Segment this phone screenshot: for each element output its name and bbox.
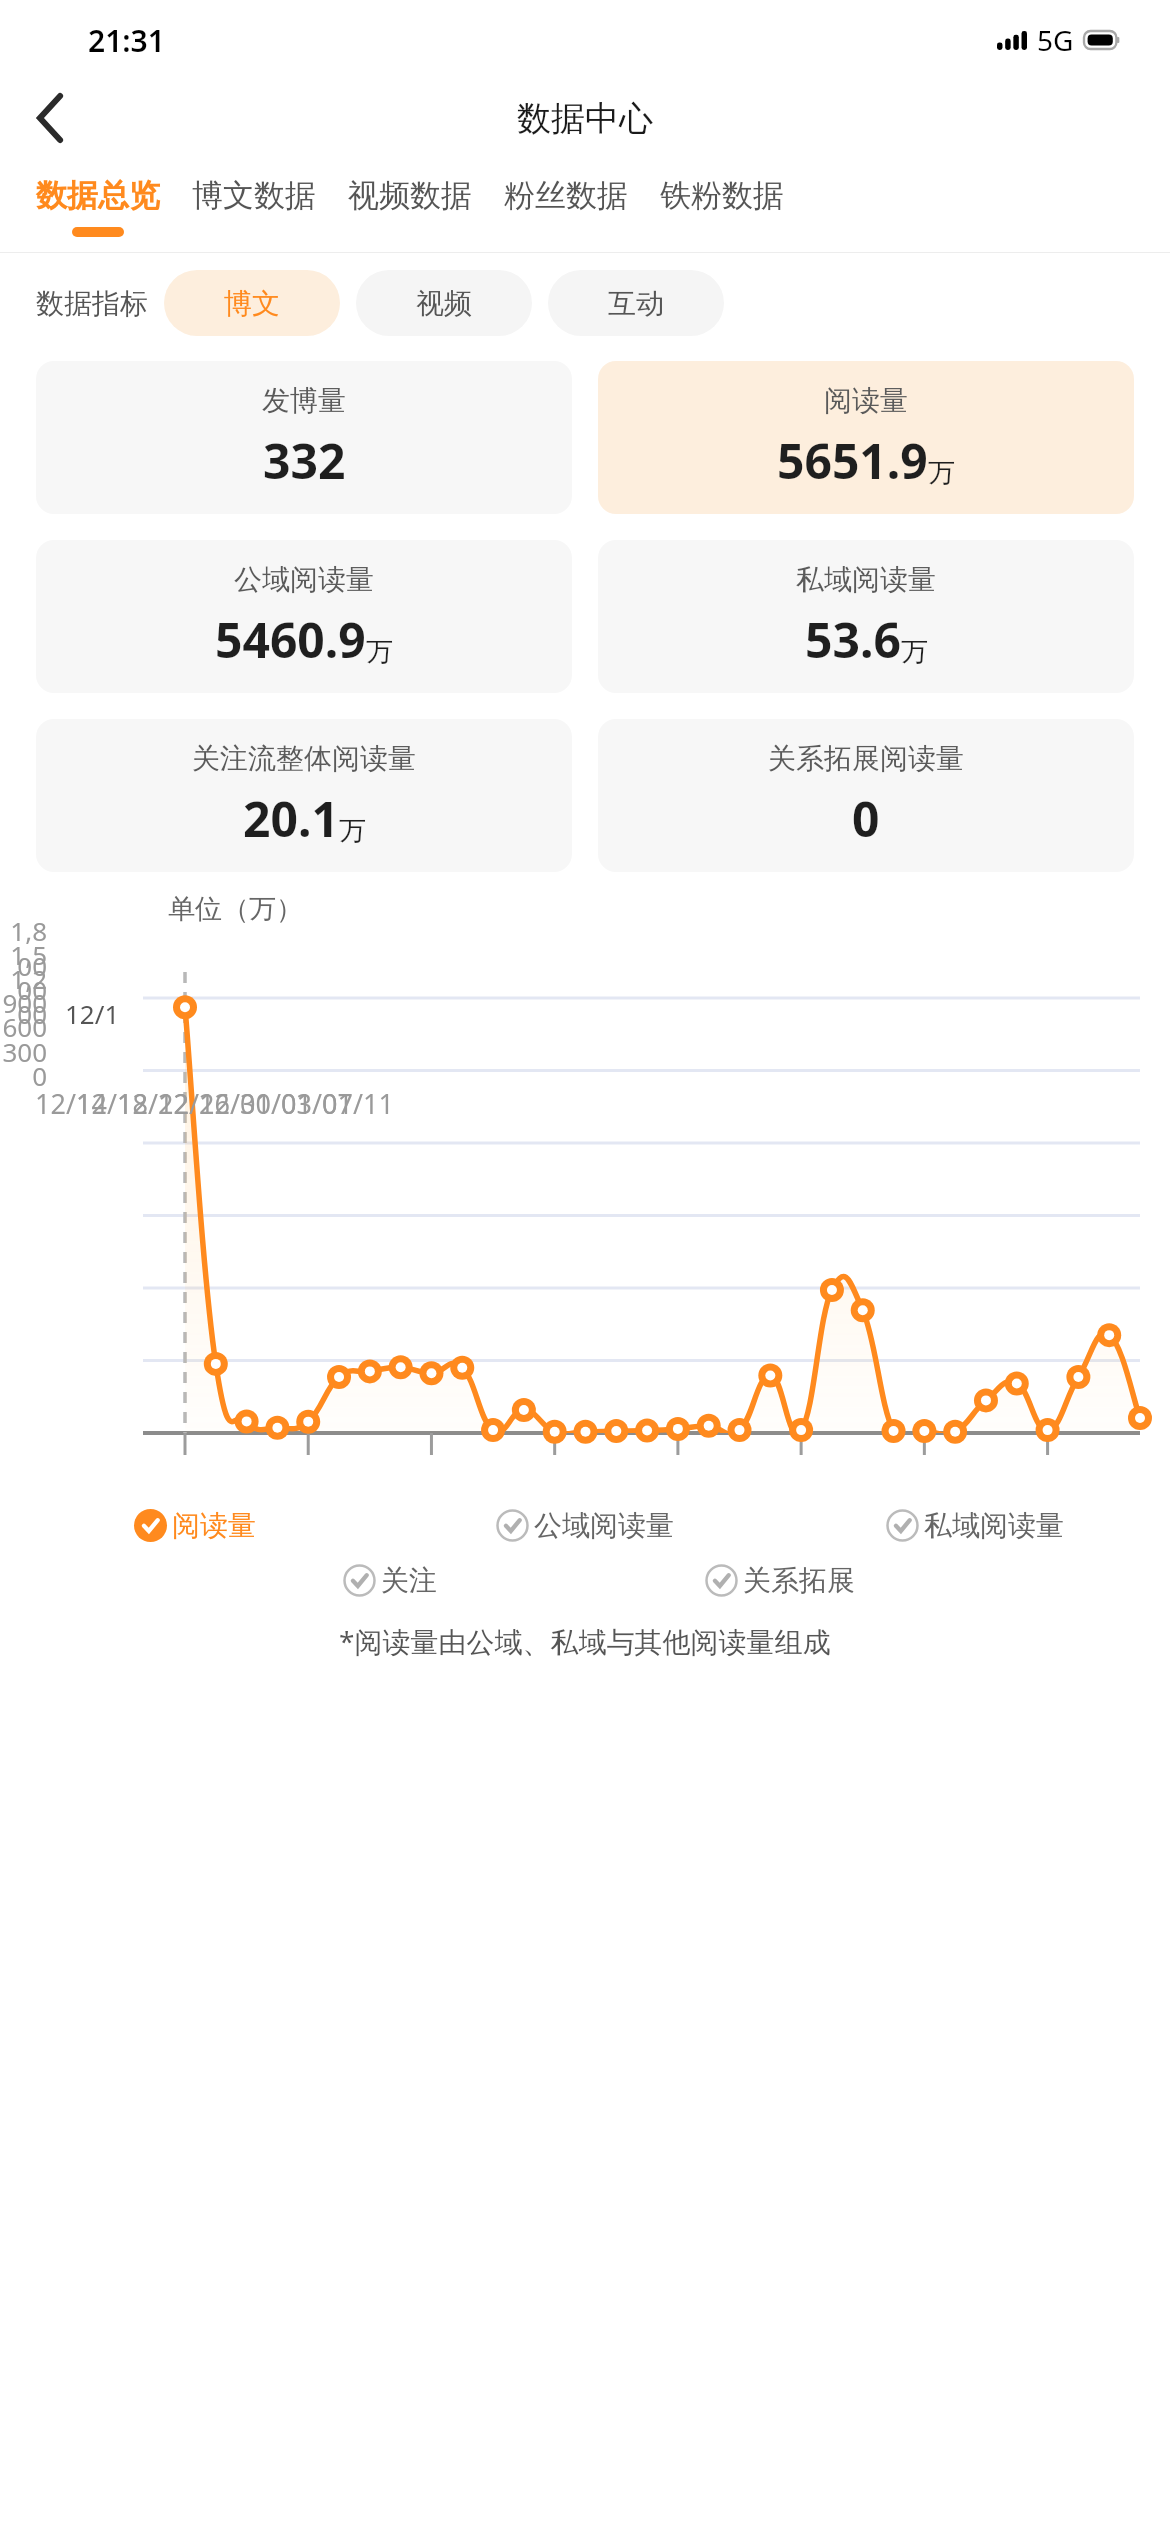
staticText: 12/22 — [117, 1085, 189, 1122]
button[interactable]: 铁粉数据 — [644, 164, 800, 252]
staticText: 0 — [852, 786, 880, 851]
staticText: 私域阅读量 — [796, 562, 936, 597]
button[interactable]: 关系拓展阅读量 — [598, 719, 1134, 872]
staticText: 关系拓展 — [743, 1563, 855, 1598]
staticText: 博文数据 — [192, 176, 316, 215]
staticText: 5460.9 — [215, 607, 366, 672]
staticText: 300 — [0, 1034, 47, 1069]
button[interactable]: 关系拓展 — [585, 1563, 975, 1598]
staticText: 公域阅读量 — [534, 1508, 674, 1543]
staticText: 12/18 — [76, 1085, 148, 1122]
button[interactable]: 发博量 — [36, 361, 572, 514]
staticText: 万 — [928, 456, 955, 490]
staticText: 关系拓展阅读量 — [768, 741, 964, 776]
staticText: 视频 — [416, 286, 472, 321]
staticText: 53.6 — [805, 607, 901, 672]
staticText: 5651.9 — [777, 428, 928, 493]
staticText: 01/03 — [240, 1085, 312, 1122]
staticText: 万 — [339, 814, 366, 848]
button[interactable]: 博文数据 — [176, 164, 332, 252]
button[interactable]: 粉丝数据 — [488, 164, 644, 252]
staticText: 单位（万） — [168, 892, 303, 926]
staticText: 互动 — [608, 286, 664, 321]
staticText: 关注 — [381, 1563, 437, 1598]
staticText: 数据指标 — [36, 286, 148, 321]
staticText: 1,800 — [0, 913, 47, 983]
staticText: 数据中心 — [517, 97, 653, 140]
staticText: 12/14 — [35, 1085, 107, 1122]
button[interactable]: 阅读量 — [598, 361, 1134, 514]
button[interactable]: 私域阅读量 — [598, 540, 1134, 693]
staticText: 0 — [0, 1058, 47, 1093]
button[interactable]: 互动 — [548, 270, 724, 336]
staticText: 万 — [366, 635, 393, 669]
staticText: 21:31 — [88, 20, 165, 61]
button[interactable]: 阅读量 — [0, 1508, 390, 1543]
button[interactable]: 视频 — [356, 270, 532, 336]
staticText: 数据总览 — [36, 176, 160, 215]
staticText: 1,200 — [0, 961, 47, 1031]
button[interactable]: Back — [14, 82, 86, 154]
staticText: 12/26 — [158, 1085, 230, 1122]
staticText: 私域阅读量 — [924, 1508, 1064, 1543]
button[interactable]: 博文 — [164, 270, 340, 336]
button[interactable]: 关注 — [195, 1563, 585, 1598]
staticText: 332 — [263, 428, 346, 493]
staticText: *阅读量由公域、私域与其他阅读量组成 — [339, 1622, 831, 1660]
staticText: 20.1 — [243, 786, 339, 851]
staticText: 1,500 — [0, 937, 47, 1007]
staticText: 公域阅读量 — [234, 562, 374, 597]
staticText: 5G — [1037, 21, 1074, 59]
staticText: 12/30 — [199, 1085, 271, 1122]
staticText: 发博量 — [262, 383, 346, 418]
button[interactable]: 数据总览 — [20, 164, 176, 252]
button[interactable]: 关注流整体阅读量 — [36, 719, 572, 872]
staticText: 铁粉数据 — [660, 176, 784, 215]
staticText: 阅读量 — [824, 383, 908, 418]
button[interactable]: 私域阅读量 — [780, 1508, 1170, 1543]
staticText: 900 — [0, 985, 47, 1020]
staticText: 粉丝数据 — [504, 176, 628, 215]
staticText: 阅读量 — [172, 1508, 256, 1543]
staticText: 01/11 — [322, 1085, 394, 1122]
staticText: 万 — [901, 635, 928, 669]
staticText: 博文 — [224, 286, 280, 321]
staticText: 关注流整体阅读量 — [192, 741, 416, 776]
button[interactable]: 公域阅读量 — [36, 540, 572, 693]
staticText: 01/07 — [281, 1085, 353, 1122]
button[interactable]: 视频数据 — [332, 164, 488, 252]
staticText: 视频数据 — [348, 176, 472, 215]
button[interactable]: 公域阅读量 — [390, 1508, 780, 1543]
staticText: 600 — [0, 1009, 47, 1044]
staticText: 12/14 — [65, 996, 128, 1028]
